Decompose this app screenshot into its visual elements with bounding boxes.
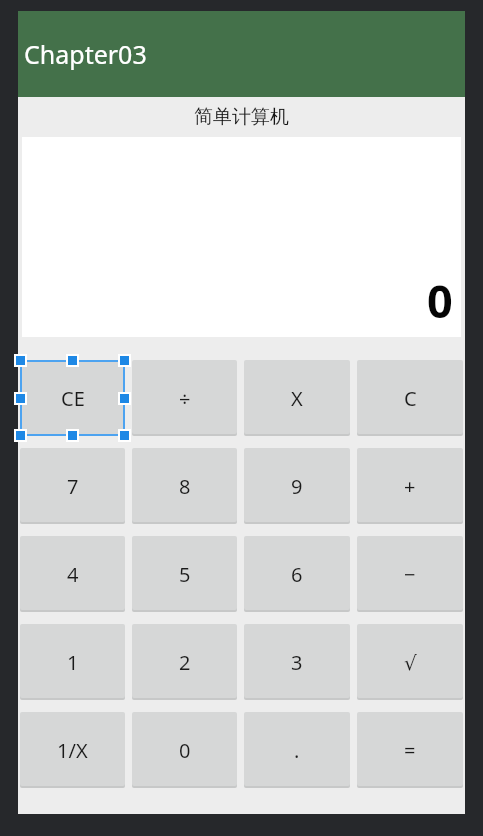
button[interactable]: = [357, 712, 463, 788]
button[interactable]: − [357, 536, 463, 612]
staticText: 0 [427, 270, 453, 331]
staticText: √ [404, 651, 417, 674]
button[interactable]: √ [357, 624, 463, 700]
staticText: 6 [291, 561, 303, 588]
button[interactable]: 4 [20, 536, 125, 612]
button[interactable]: 0 [132, 712, 237, 788]
staticText: ÷ [179, 385, 191, 412]
staticText: 简单计算机 [194, 105, 289, 129]
button[interactable]: 8 [132, 448, 237, 524]
staticText: . [294, 737, 300, 764]
button[interactable]: . [244, 712, 350, 788]
button[interactable]: 7 [20, 448, 125, 524]
staticText: 7 [67, 473, 79, 500]
staticText: 5 [179, 561, 191, 588]
staticText: C [404, 385, 417, 412]
staticText: 0 [179, 737, 191, 764]
staticText: 1 [67, 649, 79, 676]
button[interactable]: + [357, 448, 463, 524]
button[interactable]: C [357, 360, 463, 436]
staticText: 9 [291, 473, 303, 500]
button[interactable]: 5 [132, 536, 237, 612]
button[interactable]: 1 [20, 624, 125, 700]
staticText: 4 [67, 561, 79, 588]
staticText: 1/X [57, 737, 88, 764]
staticText: 2 [179, 649, 191, 676]
button[interactable]: 3 [244, 624, 350, 700]
button[interactable]: 2 [132, 624, 237, 700]
button[interactable]: 9 [244, 448, 350, 524]
staticText: X [291, 385, 303, 412]
button[interactable]: 6 [244, 536, 350, 612]
button[interactable]: X [244, 360, 350, 436]
staticText: Chapter03 [24, 37, 147, 71]
button[interactable]: CE [20, 360, 125, 436]
button[interactable]: 1/X [20, 712, 125, 788]
staticText: = [404, 737, 416, 764]
staticText: − [404, 561, 416, 588]
button[interactable]: ÷ [132, 360, 237, 436]
staticText: + [404, 473, 416, 500]
staticText: 3 [291, 649, 303, 676]
staticText: 8 [179, 473, 191, 500]
staticText: CE [61, 385, 85, 412]
